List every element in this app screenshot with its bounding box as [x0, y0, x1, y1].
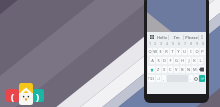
- button[interactable]: Please: [184, 33, 198, 41]
- button[interactable]: 5: [170, 42, 175, 46]
- button[interactable]: 1: [148, 42, 152, 46]
- button[interactable]: J: [186, 57, 191, 64]
- button[interactable]: P: [200, 48, 205, 55]
- staticText: W: [153, 49, 157, 54]
- button[interactable]: App logo: [6, 75, 46, 105]
- button[interactable]: O: [194, 48, 199, 55]
- staticText: H: [181, 58, 184, 63]
- button[interactable]: More options: [199, 33, 205, 41]
- staticText: G: [175, 58, 178, 63]
- button[interactable]: U: [182, 48, 187, 55]
- button[interactable]: 2: [153, 42, 157, 46]
- staticText: I'm: [173, 35, 180, 40]
- staticText: P: [201, 49, 204, 54]
- button[interactable]: W: [153, 48, 157, 55]
- staticText: V: [175, 67, 178, 72]
- staticText: 6: [178, 42, 180, 46]
- staticText: X: [163, 67, 166, 72]
- staticText: J: [188, 58, 190, 63]
- staticText: 5: [172, 42, 174, 46]
- staticText: Hello: [157, 35, 167, 40]
- staticText: 7: [184, 42, 186, 46]
- staticText: :-): [157, 77, 160, 81]
- button[interactable]: 6: [176, 42, 181, 46]
- button[interactable]: 4: [164, 42, 169, 46]
- staticText: O: [195, 49, 199, 54]
- button[interactable]: Voice input: [194, 75, 198, 82]
- button[interactable]: X: [162, 66, 167, 73]
- staticText: Q: [148, 49, 152, 54]
- button[interactable]: D: [162, 57, 167, 64]
- button[interactable]: E: [158, 48, 163, 55]
- staticText: 0: [202, 42, 204, 46]
- staticText: F: [169, 58, 172, 63]
- button[interactable]: Emoji: [156, 75, 161, 82]
- staticText: U: [183, 49, 186, 54]
- button[interactable]: ?123: [148, 75, 155, 82]
- button[interactable]: I: [188, 48, 193, 55]
- button[interactable]: S: [156, 57, 161, 64]
- button[interactable]: K: [192, 57, 197, 64]
- button[interactable]: I'm: [169, 33, 183, 41]
- button[interactable]: R: [164, 48, 169, 55]
- button[interactable]: ,: [162, 75, 166, 82]
- staticText: Y: [177, 49, 180, 54]
- button[interactable]: L: [198, 57, 203, 64]
- button[interactable]: Q: [148, 48, 152, 55]
- button[interactable]: C: [168, 66, 173, 73]
- staticText: A: [151, 58, 154, 63]
- staticText: C: [169, 67, 172, 72]
- staticText: 9: [196, 42, 198, 46]
- staticText: N: [187, 67, 191, 72]
- button[interactable]: Keyboard menu: [148, 33, 155, 41]
- button[interactable]: Enter: [199, 75, 205, 82]
- staticText: ?123: [148, 77, 155, 81]
- button[interactable]: A: [150, 57, 155, 64]
- staticText: B: [181, 67, 184, 72]
- button[interactable]: Shift: [148, 66, 155, 73]
- button[interactable]: 0: [200, 42, 205, 46]
- staticText: .: [190, 76, 192, 81]
- button[interactable]: N: [186, 66, 191, 73]
- staticText: S: [157, 58, 160, 63]
- button[interactable]: G: [174, 57, 179, 64]
- staticText: K: [193, 58, 196, 63]
- staticText: T: [171, 49, 174, 54]
- button[interactable]: T: [170, 48, 175, 55]
- button[interactable]: Hello: [155, 33, 168, 41]
- staticText: 8: [190, 42, 192, 46]
- staticText: R: [165, 49, 168, 54]
- button[interactable]: Backspace: [198, 66, 205, 73]
- staticText: (: [11, 90, 15, 102]
- button[interactable]: 7: [182, 42, 187, 46]
- staticText: L: [199, 58, 202, 63]
- staticText: Z: [157, 67, 160, 72]
- staticText: 1: [149, 42, 151, 46]
- button[interactable]: 8: [188, 42, 193, 46]
- staticText: ): [36, 90, 40, 102]
- button[interactable]: F: [168, 57, 173, 64]
- staticText: D: [163, 58, 166, 63]
- staticText: M: [193, 67, 197, 72]
- button[interactable]: H: [180, 57, 185, 64]
- button[interactable]: Y: [176, 48, 181, 55]
- button[interactable]: 9: [194, 42, 199, 46]
- button[interactable]: V: [174, 66, 179, 73]
- staticText: E: [159, 49, 162, 54]
- button[interactable]: M: [192, 66, 197, 73]
- button[interactable]: B: [180, 66, 185, 73]
- staticText: 3: [160, 42, 162, 46]
- button[interactable]: 3: [158, 42, 163, 46]
- staticText: I: [190, 49, 192, 54]
- staticText: ,: [163, 76, 165, 81]
- button[interactable]: Z: [156, 66, 161, 73]
- staticText: 4: [166, 42, 168, 46]
- button[interactable]: .: [189, 75, 193, 82]
- staticText: Please: [185, 35, 198, 40]
- staticText: 2: [154, 42, 156, 46]
